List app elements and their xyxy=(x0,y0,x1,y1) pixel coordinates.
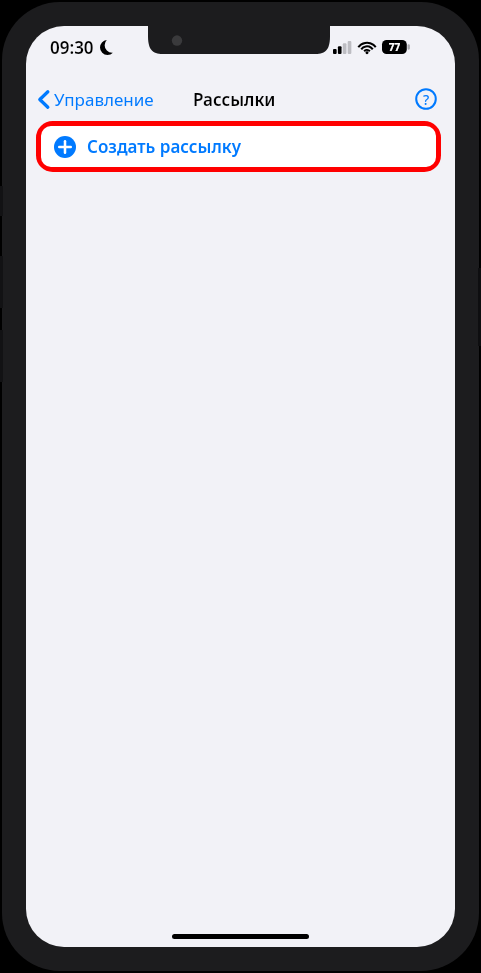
staticText: Управление xyxy=(54,88,154,111)
staticText: ? xyxy=(423,90,430,109)
staticText: Создать рассылку xyxy=(87,135,241,158)
staticText: 77 xyxy=(382,40,407,54)
staticText: Рассылки xyxy=(193,88,276,111)
button[interactable]: Управление xyxy=(34,84,158,115)
staticText: 09:30 xyxy=(50,36,94,59)
button[interactable]: Справка xyxy=(410,83,442,115)
button[interactable]: Создать рассылку xyxy=(41,126,436,167)
